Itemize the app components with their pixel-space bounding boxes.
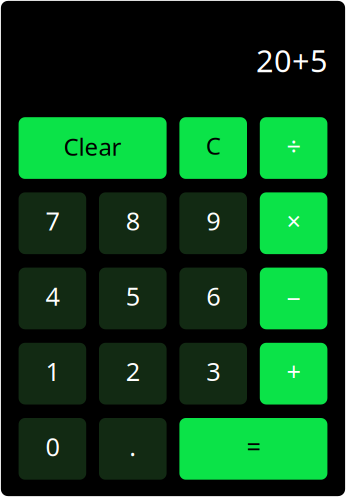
button[interactable]: Clear entry	[179, 117, 247, 179]
staticText: C	[206, 130, 221, 161]
staticText: −	[287, 281, 301, 315]
staticText: ×	[287, 204, 301, 237]
staticText: 9	[206, 204, 220, 237]
button[interactable]: 8	[99, 192, 167, 254]
staticText: 4	[45, 279, 59, 313]
staticText: 7	[45, 204, 59, 237]
button[interactable]: 1	[19, 343, 86, 404]
staticText: =	[246, 429, 260, 463]
button[interactable]: Subtract	[260, 268, 327, 329]
button[interactable]: Clear	[19, 117, 167, 179]
staticText: +	[287, 354, 301, 388]
button[interactable]: 2	[99, 343, 167, 404]
button[interactable]: 0	[19, 418, 86, 480]
button[interactable]: 3	[179, 343, 247, 404]
button[interactable]: 6	[179, 268, 247, 329]
staticText: 6	[206, 279, 220, 313]
staticText: 20+5	[256, 40, 328, 81]
staticText: ÷	[287, 129, 301, 162]
button[interactable]: Equals	[179, 418, 327, 480]
button[interactable]: Multiply	[260, 192, 327, 254]
button[interactable]: 4	[19, 268, 86, 329]
button[interactable]: Divide	[260, 117, 327, 179]
button[interactable]: 9	[179, 192, 247, 254]
staticText: 8	[126, 204, 140, 237]
button[interactable]: 7	[19, 192, 86, 254]
staticText: 3	[206, 354, 220, 388]
staticText: Clear	[64, 131, 122, 162]
staticText: 1	[45, 354, 59, 388]
staticText: 0	[45, 429, 59, 463]
staticText: .	[129, 429, 136, 463]
button[interactable]: Decimal point	[99, 418, 167, 480]
button[interactable]: Add	[260, 343, 327, 404]
button[interactable]: 5	[99, 268, 167, 329]
staticText: 2	[126, 354, 140, 388]
staticText: 5	[126, 279, 140, 313]
